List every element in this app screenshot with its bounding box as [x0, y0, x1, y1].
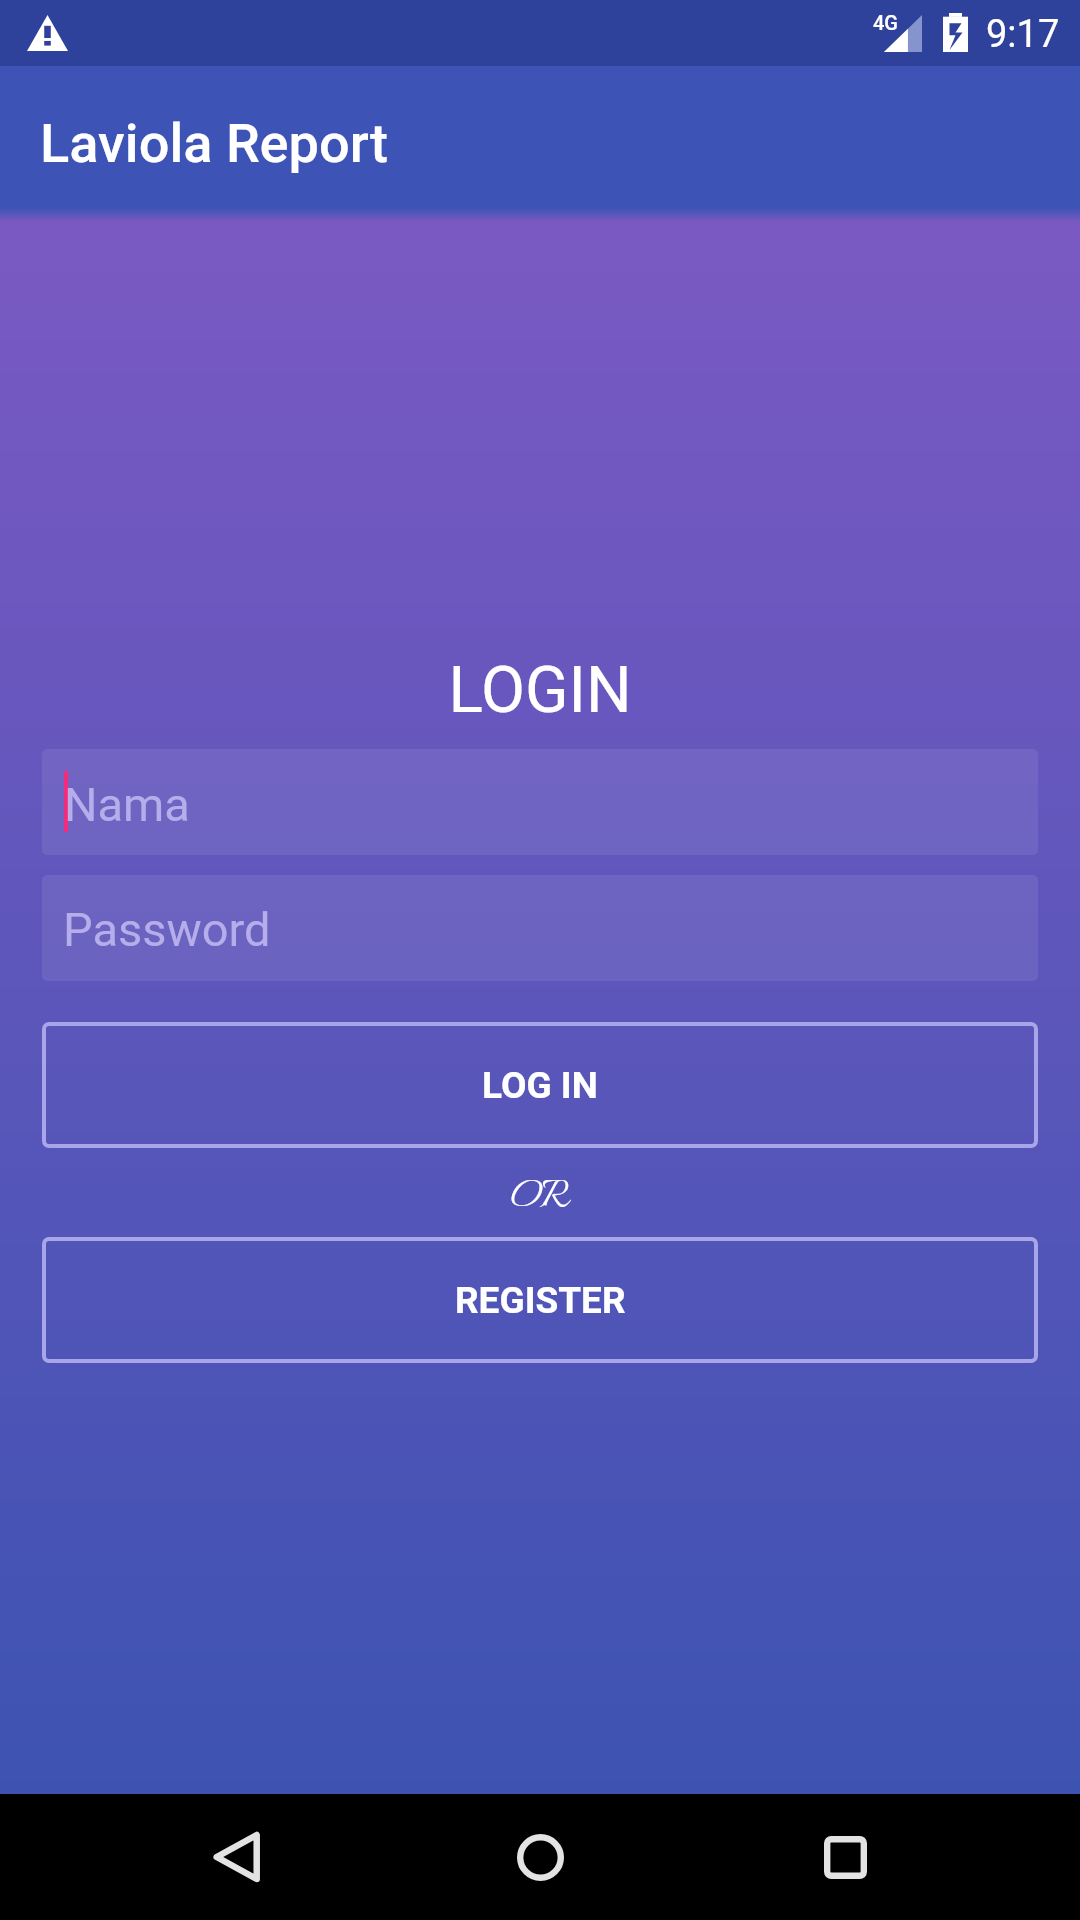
staticText: 9:17 — [986, 12, 1060, 57]
button[interactable]: Password — [42, 875, 1038, 981]
staticText: 4G — [873, 11, 898, 34]
button[interactable]: Nama — [42, 749, 1038, 855]
button[interactable]: Recent apps — [785, 1794, 905, 1920]
other: Mobile signal — [884, 15, 922, 52]
staticText: LOGIN — [0, 653, 1080, 728]
staticText: Nama — [64, 777, 190, 832]
staticText: REGISTER — [455, 1279, 626, 1322]
button[interactable]: Home — [480, 1794, 600, 1920]
button[interactable]: Back — [176, 1794, 296, 1920]
staticText: Password — [63, 902, 271, 957]
staticText: Laviola Report — [40, 112, 389, 175]
button[interactable]: REGISTER — [42, 1237, 1038, 1363]
button[interactable]: LOG IN — [42, 1022, 1038, 1148]
staticText: OR — [0, 1168, 1080, 1228]
other: Battery charging — [943, 13, 968, 52]
staticText: LOG IN — [482, 1064, 598, 1107]
other: Warning — [27, 15, 68, 51]
